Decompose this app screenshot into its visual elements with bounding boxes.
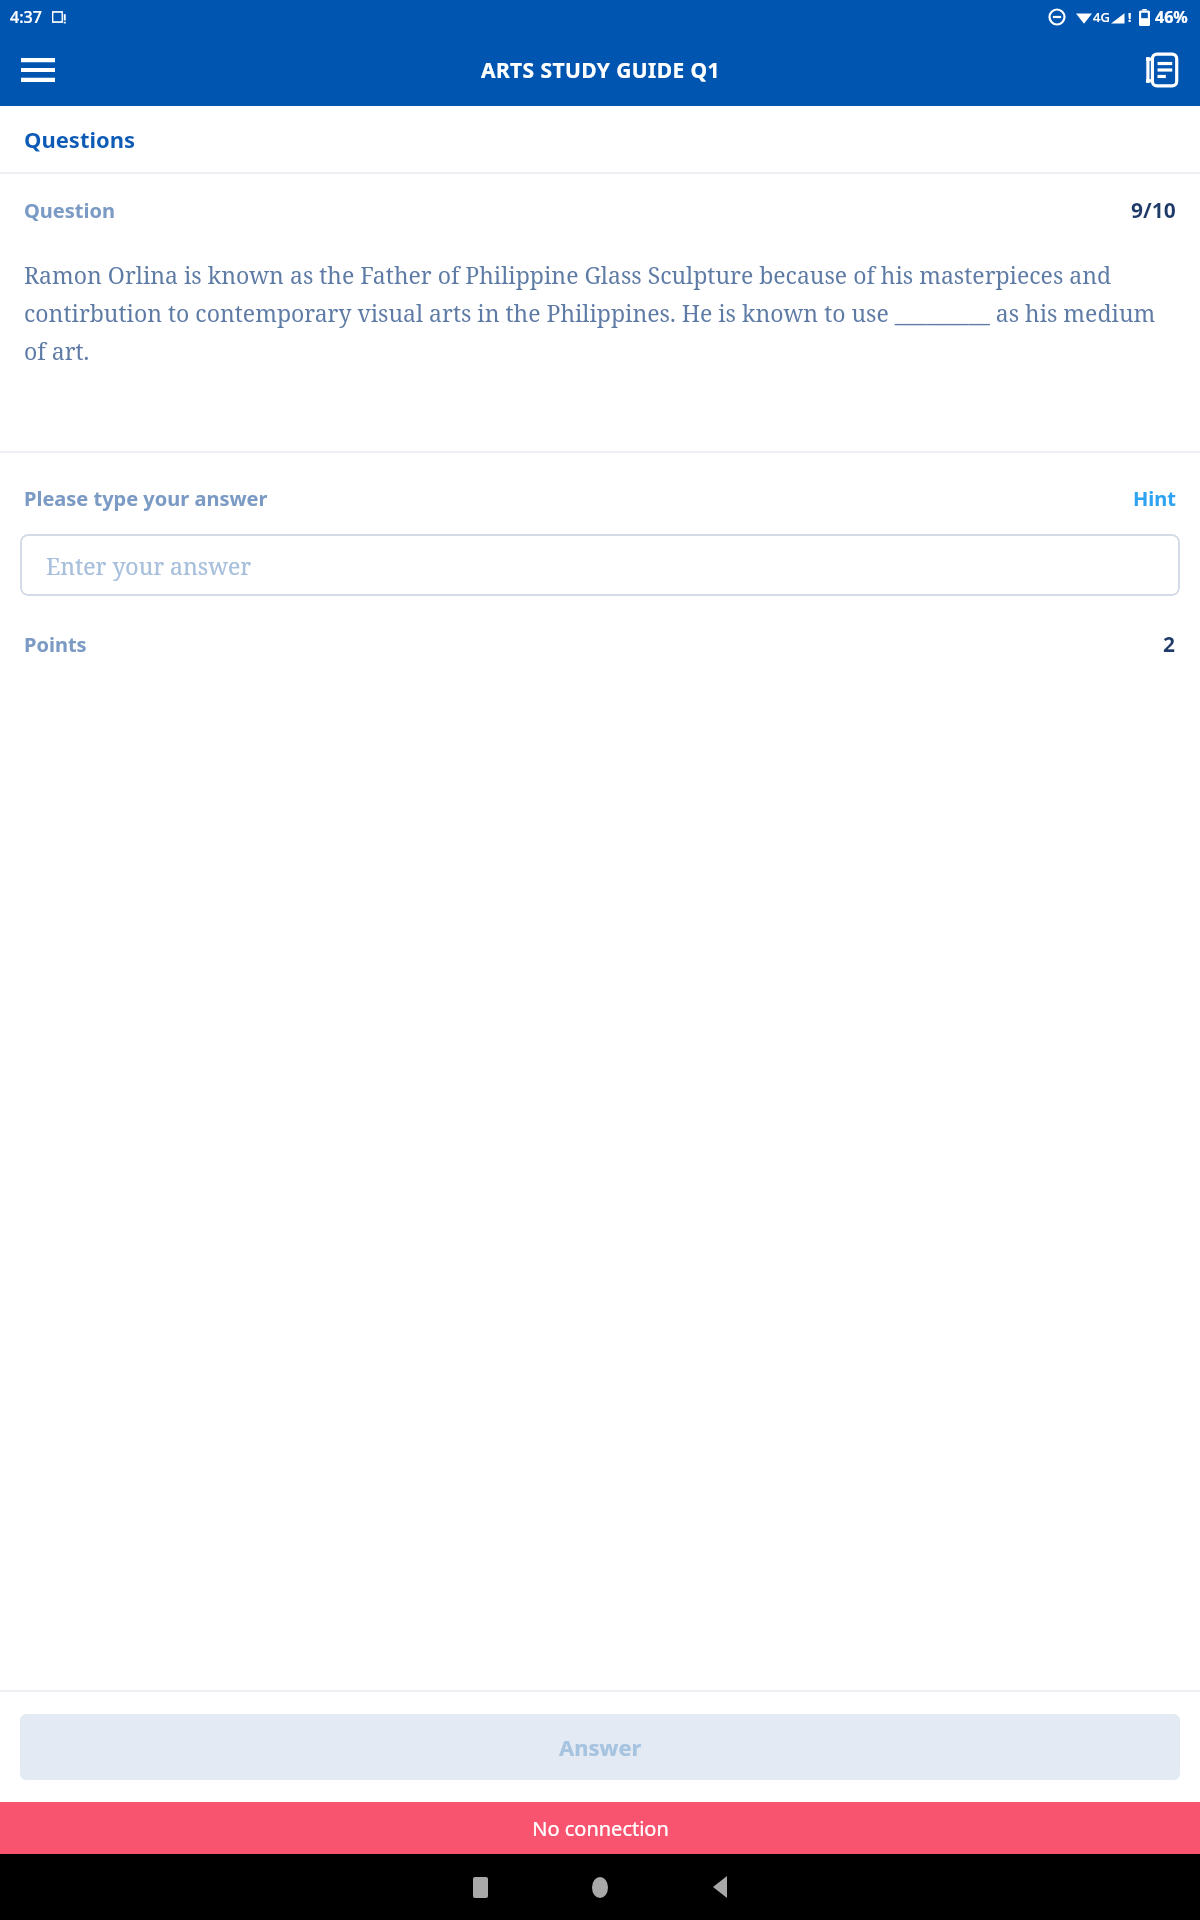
button[interactable]: Study guide details xyxy=(1136,44,1188,96)
staticText: ! xyxy=(1128,9,1132,25)
staticText: 46% xyxy=(1155,6,1188,28)
button[interactable]: Home xyxy=(560,1854,640,1920)
staticText: Enter your answer xyxy=(46,550,252,581)
staticText: 9/10 xyxy=(1131,196,1176,225)
button[interactable]: Back xyxy=(680,1854,760,1920)
button[interactable]: Hint xyxy=(1133,485,1176,512)
button[interactable]: Recent apps xyxy=(440,1854,520,1920)
staticText: 4G xyxy=(1093,8,1110,26)
staticText: Question xyxy=(24,197,115,224)
button[interactable]: Open navigation menu xyxy=(14,46,62,94)
staticText: Points xyxy=(24,631,87,658)
button[interactable]: Enter your answer xyxy=(20,534,1180,596)
button[interactable]: Answer xyxy=(20,1714,1180,1780)
staticText: ARTS STUDY GUIDE Q1 xyxy=(481,56,720,85)
staticText: Hint xyxy=(1133,485,1176,512)
staticText: 4:37 xyxy=(10,6,42,28)
staticText: No connection xyxy=(532,1815,669,1842)
staticText: Answer xyxy=(559,1732,642,1762)
staticText: Ramon Orlina is known as the Father of P… xyxy=(24,259,1176,367)
button[interactable]: Questions xyxy=(0,106,1200,172)
staticText: Questions xyxy=(24,124,136,154)
staticText: Please type your answer xyxy=(24,485,268,512)
staticText: 2 xyxy=(1163,630,1176,659)
